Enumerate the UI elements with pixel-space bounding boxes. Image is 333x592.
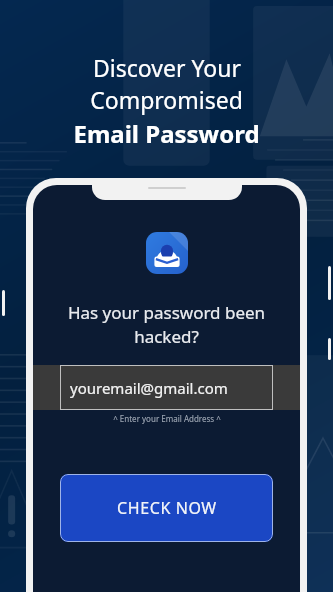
staticText: youremail@gmail.com bbox=[70, 378, 228, 398]
staticText: CHECK NOW bbox=[117, 497, 217, 519]
staticText: Email Password bbox=[73, 117, 260, 150]
button[interactable]: youremail@gmail.com bbox=[60, 365, 273, 410]
other: App icon bbox=[146, 232, 188, 274]
staticText: Has your password been hacked? bbox=[39, 301, 294, 348]
staticText: ^ Enter your Email Address ^ bbox=[113, 413, 221, 424]
staticText: Discover Your bbox=[93, 52, 241, 83]
button[interactable]: CHECK NOW bbox=[60, 474, 273, 542]
staticText: Compromised bbox=[90, 84, 243, 115]
